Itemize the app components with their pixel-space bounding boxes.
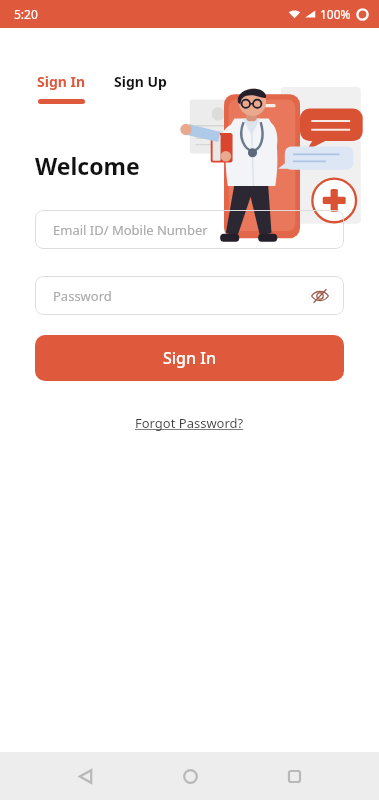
button[interactable]: Recent apps <box>274 756 314 796</box>
button[interactable]: Sign Up <box>112 70 169 93</box>
staticText: Sign Up <box>114 72 167 91</box>
staticText: 5:20 <box>14 6 38 22</box>
button[interactable]: Home <box>170 756 210 796</box>
button[interactable]: Sign In <box>35 335 344 381</box>
staticText: 100% <box>320 6 351 22</box>
button[interactable]: Email ID/ Mobile Number <box>35 210 344 249</box>
staticText: Email ID/ Mobile Number <box>53 221 208 239</box>
button[interactable]: Forgot Password? <box>127 410 252 436</box>
button[interactable]: Back <box>65 756 105 796</box>
button[interactable]: Sign In <box>35 70 88 106</box>
button[interactable]: Password <box>35 276 344 315</box>
staticText: Welcome <box>35 150 140 181</box>
staticText: Sign In <box>163 347 216 369</box>
staticText: Password <box>53 287 112 305</box>
button[interactable]: Show password <box>310 286 330 306</box>
staticText: Sign In <box>37 72 86 91</box>
